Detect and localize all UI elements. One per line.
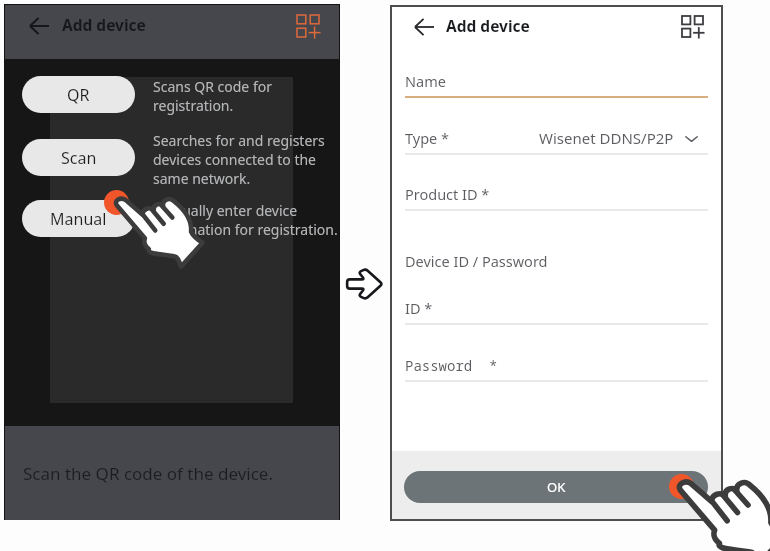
- staticText: Device ID / Password: [405, 251, 548, 271]
- button[interactable]: Back: [30, 17, 49, 35]
- button[interactable]: Manual: [22, 200, 135, 237]
- staticText: Searches for and registers: [153, 131, 325, 150]
- button[interactable]: Add QR device: [297, 15, 319, 37]
- button[interactable]: Add QR device: [682, 16, 703, 37]
- staticText: Product ID *: [405, 184, 490, 204]
- staticText: same network.: [153, 169, 251, 188]
- button[interactable]: Back: [415, 18, 434, 36]
- staticText: QR: [67, 84, 90, 106]
- staticText: Name: [405, 71, 446, 91]
- staticText: Scans QR code for: [153, 77, 272, 96]
- staticText: OK: [547, 478, 566, 496]
- button[interactable]: QR: [22, 76, 135, 113]
- staticText: Scan: [61, 147, 97, 169]
- staticText: Wisenet DDNS/P2P: [539, 128, 674, 148]
- staticText: Type *: [405, 128, 450, 148]
- staticText: Add device: [62, 14, 146, 35]
- staticText: information for registration.: [153, 220, 338, 239]
- staticText: Password *: [405, 356, 498, 375]
- staticText: Manual: [50, 208, 107, 230]
- staticText: Add device: [446, 15, 530, 36]
- staticText: ID *: [405, 298, 433, 318]
- staticText: Scan the QR code of the device.: [23, 462, 274, 485]
- staticText: Manually enter device: [153, 201, 298, 220]
- button[interactable]: OK: [404, 471, 708, 503]
- button[interactable]: Scan: [22, 139, 135, 176]
- staticText: registration.: [153, 96, 234, 115]
- staticText: devices connected to the: [153, 150, 316, 169]
